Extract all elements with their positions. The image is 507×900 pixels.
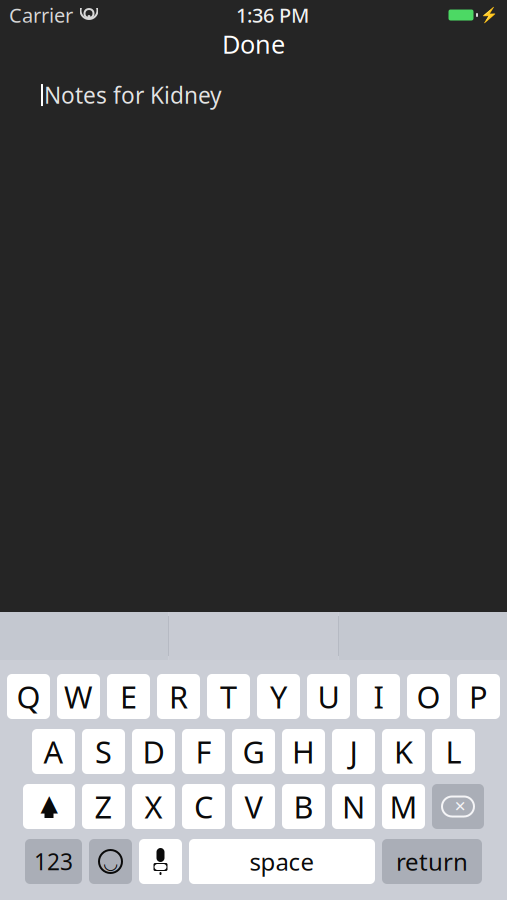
- staticText: Q: [16, 676, 40, 717]
- button[interactable]: W: [57, 674, 100, 719]
- button[interactable]: space: [189, 839, 375, 884]
- staticText: space: [249, 846, 314, 877]
- staticText: ✕: [454, 798, 466, 815]
- staticText: T: [220, 676, 237, 717]
- button[interactable]: G: [232, 729, 275, 774]
- staticText: J: [349, 731, 357, 772]
- staticText: Y: [270, 676, 287, 717]
- staticText: S: [95, 731, 112, 772]
- button[interactable]: 123: [25, 839, 82, 884]
- button[interactable]: H: [282, 729, 325, 774]
- button[interactable]: A: [32, 729, 75, 774]
- button[interactable]: M: [382, 784, 425, 829]
- staticText: B: [293, 786, 313, 827]
- staticText: X: [144, 786, 162, 827]
- staticText: Notes for Kidney: [44, 80, 222, 110]
- button[interactable]: O: [407, 674, 450, 719]
- staticText: Z: [94, 786, 112, 827]
- button[interactable]: Dictation: [139, 839, 182, 884]
- button[interactable]: Q: [7, 674, 50, 719]
- button[interactable]: U: [307, 674, 350, 719]
- button[interactable]: V: [232, 784, 275, 829]
- button[interactable]: Shift: [23, 784, 75, 829]
- staticText: H: [292, 731, 315, 772]
- button[interactable]: J: [332, 729, 375, 774]
- button[interactable]: Done: [198, 26, 308, 62]
- button[interactable]: I: [357, 674, 400, 719]
- staticText: 123: [34, 846, 73, 876]
- staticText: U: [317, 676, 339, 717]
- staticText: G: [242, 731, 264, 772]
- staticText: Carrier: [9, 2, 73, 28]
- button[interactable]: B: [282, 784, 325, 829]
- button[interactable]: K: [382, 729, 425, 774]
- staticText: V: [244, 786, 262, 827]
- button[interactable]: Y: [257, 674, 300, 719]
- staticText: ▲: [40, 790, 57, 816]
- button[interactable]: Delete: [432, 784, 484, 829]
- staticText: N: [342, 786, 365, 827]
- staticText: F: [195, 731, 211, 772]
- staticText: Done: [222, 27, 285, 61]
- button[interactable]: C: [182, 784, 225, 829]
- staticText: W: [64, 676, 93, 717]
- button[interactable]: S: [82, 729, 125, 774]
- button[interactable]: E: [107, 674, 150, 719]
- button[interactable]: return: [382, 839, 482, 884]
- staticText: O: [416, 676, 440, 717]
- button[interactable]: P: [457, 674, 500, 719]
- staticText: D: [142, 731, 164, 772]
- button[interactable]: F: [182, 729, 225, 774]
- button[interactable]: Z: [82, 784, 125, 829]
- button[interactable]: D: [132, 729, 175, 774]
- staticText: ⚡: [480, 7, 498, 23]
- button[interactable]: R: [157, 674, 200, 719]
- button[interactable]: X: [132, 784, 175, 829]
- staticText: A: [43, 731, 63, 772]
- staticText: M: [389, 786, 417, 827]
- staticText: 1:36 PM: [236, 2, 309, 28]
- button[interactable]: L: [432, 729, 475, 774]
- button[interactable]: N: [332, 784, 375, 829]
- staticText: I: [373, 676, 383, 717]
- button[interactable]: T: [207, 674, 250, 719]
- staticText: E: [120, 676, 137, 717]
- staticText: P: [469, 676, 488, 717]
- staticText: K: [394, 731, 413, 772]
- staticText: C: [194, 786, 213, 827]
- staticText: L: [445, 731, 461, 772]
- staticText: R: [169, 676, 188, 717]
- staticText: ◡: [104, 853, 117, 873]
- button[interactable]: Emoji: [89, 839, 132, 884]
- staticText: return: [396, 846, 468, 877]
